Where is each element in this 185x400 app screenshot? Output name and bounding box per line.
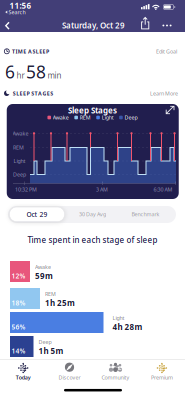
button[interactable]: More [162, 25, 171, 26]
staticText: 14% [11, 347, 25, 355]
staticText: 6 [5, 60, 15, 83]
staticText: Deep [38, 338, 51, 346]
staticText: 30 Day Avg [79, 211, 106, 218]
button[interactable]: Edit Goal [156, 48, 177, 55]
staticText: REM [13, 144, 24, 151]
staticText: Deep [124, 114, 137, 121]
button[interactable]: Community [93, 361, 139, 387]
staticText: 56% [11, 323, 25, 331]
staticText: 58 [26, 60, 46, 83]
staticText: Awake [12, 130, 28, 137]
staticText: REM [45, 290, 56, 298]
staticText: TIME ASLEEP [12, 48, 49, 55]
staticText: Sleep Stages [68, 105, 117, 116]
staticText: Discover [58, 374, 80, 381]
button[interactable]: Discover [46, 361, 92, 387]
staticText: 1h 5m [38, 345, 63, 356]
button[interactable]: 30 Day Avg [65, 207, 119, 222]
staticText: Light [102, 114, 114, 121]
staticText: Search [8, 9, 25, 16]
staticText: Benchmark [131, 211, 159, 218]
staticText: 3 AM [96, 186, 108, 193]
staticText: Awake [53, 114, 69, 121]
staticText: 4h 28m [112, 321, 142, 332]
staticText: Learn More [150, 90, 178, 97]
staticText: SLEEP STAGES [13, 90, 53, 97]
staticText: 59m [35, 270, 53, 281]
staticText: REM [80, 114, 91, 121]
button[interactable]: Benchmark [118, 207, 172, 222]
staticText: 1h 25m [45, 297, 75, 308]
staticText: Light [13, 157, 25, 165]
staticText: Oct 29 [26, 210, 47, 219]
staticText: Light [112, 314, 124, 322]
staticText: Premium [151, 374, 173, 381]
button[interactable]: Premium [139, 361, 185, 387]
button[interactable]: Oct 29 [9, 207, 64, 222]
staticText: 12% [11, 272, 25, 280]
staticText: hr [16, 70, 24, 81]
staticText: Awake [35, 263, 51, 271]
staticText: 11:56 [9, 0, 31, 11]
staticText: Community [102, 374, 130, 381]
button[interactable]: Back [4, 22, 10, 30]
staticText: 6:30 AM [153, 186, 172, 193]
button[interactable]: Share [141, 17, 150, 29]
staticText: Edit Goal [156, 48, 177, 55]
staticText: Saturday, Oct 29 [62, 20, 125, 31]
staticText: Deep [13, 171, 26, 178]
staticText: 18% [11, 299, 25, 307]
button[interactable]: Today [0, 361, 46, 387]
button[interactable]: Learn More [150, 90, 178, 97]
staticText: min [47, 70, 61, 81]
staticText: Time spent in each stage of sleep [27, 235, 157, 245]
button[interactable]: Expand [166, 106, 174, 114]
staticText: Today [16, 374, 31, 381]
staticText: 10:32 PM [15, 186, 37, 193]
